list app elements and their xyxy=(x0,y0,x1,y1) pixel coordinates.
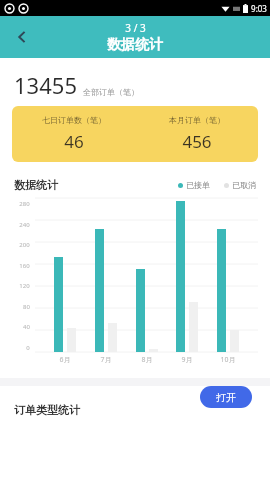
staticText: 120 xyxy=(19,282,30,290)
staticText: 10月 xyxy=(220,355,236,365)
staticText: 9月 xyxy=(181,355,193,365)
staticText: 打开 xyxy=(216,391,236,404)
staticText: 3 / 3 xyxy=(125,21,146,35)
staticText: 46 xyxy=(64,130,84,153)
staticText: 7月 xyxy=(100,355,112,365)
staticText: 数据统计 xyxy=(14,178,58,192)
staticText: 0 xyxy=(26,344,30,352)
staticText: 6月 xyxy=(59,355,71,365)
staticText: 160 xyxy=(19,262,30,270)
staticText: 80 xyxy=(23,303,30,311)
staticText: 8月 xyxy=(141,355,153,365)
staticText: 已取消 xyxy=(232,180,256,190)
button[interactable]: 已取消 xyxy=(224,180,256,190)
button[interactable]: 七日订单数（笔） xyxy=(12,106,258,162)
staticText: 已接单 xyxy=(186,180,210,190)
staticText: 240 xyxy=(19,221,30,229)
staticText: 40 xyxy=(23,323,30,331)
staticText: 280 xyxy=(19,200,30,208)
staticText: 13455 xyxy=(14,70,77,100)
button[interactable]: Back xyxy=(6,21,38,53)
staticText: 全部订单（笔） xyxy=(83,87,139,97)
button[interactable]: 已接单 xyxy=(178,180,210,190)
staticText: 456 xyxy=(182,130,212,153)
staticText: 七日订单数（笔） xyxy=(42,115,106,125)
staticText: 订单类型统计 xyxy=(14,403,80,417)
staticText: 200 xyxy=(19,241,30,249)
staticText: 本月订单（笔） xyxy=(169,115,225,125)
staticText: 数据统计 xyxy=(107,36,163,54)
staticText: 9:03 xyxy=(251,3,267,14)
button[interactable]: 打开 xyxy=(200,386,252,408)
